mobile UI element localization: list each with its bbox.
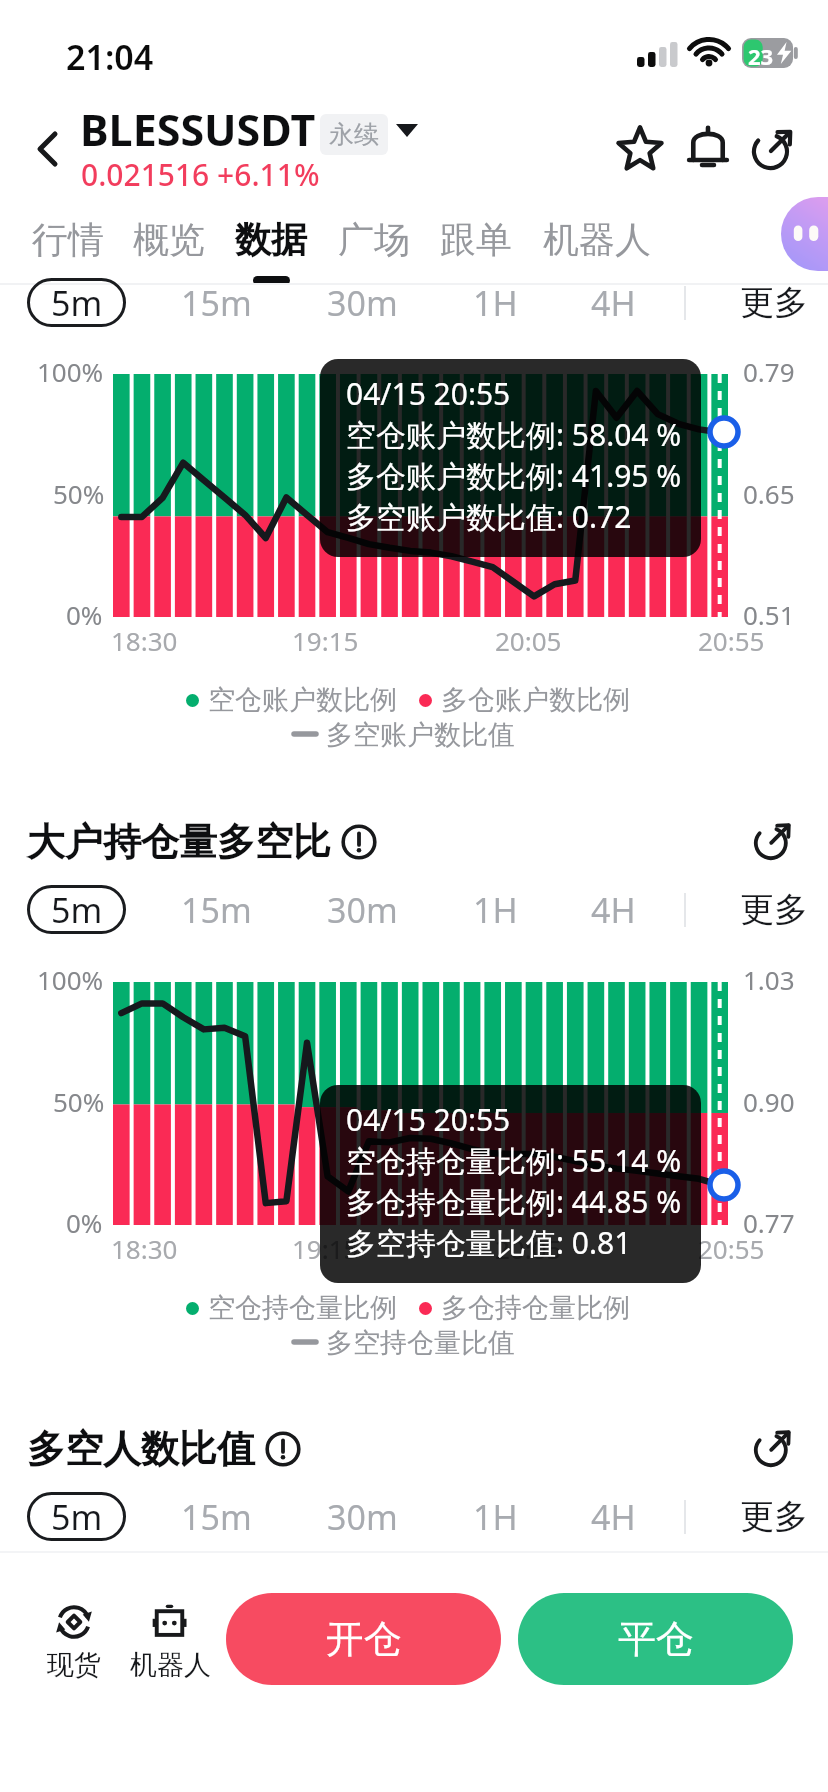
staticText: 15m <box>181 1494 252 1539</box>
button[interactable]: 15m <box>165 280 268 325</box>
staticText: 多空持仓量比值: 0.81 <box>346 1222 632 1263</box>
button[interactable]: Price alert <box>676 116 740 180</box>
staticText: 多仓持仓量比例 <box>441 1291 630 1325</box>
button[interactable]: Favorite <box>608 116 672 180</box>
staticText: 30m <box>327 280 398 325</box>
button[interactable]: Contract type <box>396 124 418 137</box>
staticText: 跟单 <box>440 217 512 262</box>
staticText: 空仓持仓量比例 <box>208 1291 397 1325</box>
staticText: 4H <box>591 887 636 932</box>
button[interactable]: 1H <box>457 280 534 325</box>
staticText: 4H <box>591 280 636 325</box>
button[interactable]: 30m <box>311 887 414 932</box>
button[interactable]: 更多 <box>726 280 822 325</box>
staticText: 多空人数比值 <box>27 1425 255 1473</box>
button[interactable]: 1H <box>457 1494 534 1539</box>
staticText: 04/15 20:55 <box>346 1099 511 1140</box>
staticText: BLESSUSDT <box>80 100 316 159</box>
button[interactable]: Back <box>12 114 82 184</box>
button[interactable]: 机器人 <box>529 205 665 283</box>
staticText: 多仓账户数比例: 41.95 % <box>346 455 682 496</box>
button[interactable]: Share <box>742 116 806 180</box>
button[interactable]: 开仓 <box>226 1593 501 1685</box>
staticText: 19:15 <box>292 1231 359 1266</box>
staticText: 空仓持仓量比例: 55.14 % <box>346 1140 682 1181</box>
staticText: 18:30 <box>111 1231 178 1266</box>
staticText: 5m <box>51 280 103 326</box>
button[interactable]: AI assistant <box>781 197 828 271</box>
button[interactable]: 30m <box>311 280 414 325</box>
staticText: 50% <box>53 1084 105 1119</box>
button[interactable]: Info <box>265 1431 301 1467</box>
staticText: 多空账户数比值: 0.72 <box>346 496 632 537</box>
staticText: 空仓账户数比例 <box>208 683 397 717</box>
button[interactable]: Open full chart <box>745 811 803 869</box>
staticText: 21:04 <box>66 34 154 80</box>
staticText: 多仓持仓量比例: 44.85 % <box>346 1181 682 1222</box>
button[interactable]: 5m <box>27 885 126 934</box>
button[interactable]: Open full chart <box>745 1418 803 1476</box>
button[interactable]: 1H <box>457 887 534 932</box>
button[interactable]: 行情 <box>18 205 118 283</box>
staticText: 0.65 <box>743 476 795 511</box>
staticText: 行情 <box>32 217 104 262</box>
staticText: 15m <box>181 280 252 325</box>
button[interactable]: 现货 <box>34 1594 114 1686</box>
button[interactable]: Info <box>341 824 377 860</box>
staticText: 100% <box>37 962 104 997</box>
button[interactable]: 数据 <box>221 205 321 283</box>
staticText: 概览 <box>133 217 205 262</box>
button[interactable]: 4H <box>575 280 652 325</box>
button[interactable]: 机器人 <box>126 1594 216 1686</box>
staticText: 0.51 <box>743 597 795 632</box>
staticText: 100% <box>37 354 104 389</box>
staticText: 30m <box>327 1494 398 1539</box>
button[interactable]: 跟单 <box>426 205 526 283</box>
staticText: 多空账户数比值 <box>326 718 515 752</box>
staticText: 15m <box>181 887 252 932</box>
button[interactable]: 4H <box>575 887 652 932</box>
staticText: 0.021516 +6.11% <box>81 154 320 195</box>
staticText: 多仓账户数比例 <box>441 683 630 717</box>
button[interactable]: 广场 <box>324 205 424 283</box>
staticText: 04/15 20:55 <box>346 373 511 414</box>
staticText: 4H <box>591 1494 636 1539</box>
staticText: 机器人 <box>543 217 651 262</box>
staticText: 1H <box>473 280 518 325</box>
staticText: 开仓 <box>326 1615 402 1663</box>
button[interactable]: 15m <box>165 887 268 932</box>
staticText: 20:05 <box>495 623 562 658</box>
staticText: 5m <box>51 1494 103 1540</box>
staticText: 平仓 <box>618 1615 694 1663</box>
staticText: 多空持仓量比值 <box>326 1326 515 1360</box>
staticText: 18:30 <box>111 623 178 658</box>
staticText: 1H <box>473 1494 518 1539</box>
staticText: 机器人 <box>130 1648 211 1682</box>
button[interactable]: 4H <box>575 1494 652 1539</box>
staticText: 数据 <box>235 217 307 262</box>
button[interactable]: 更多 <box>726 1494 822 1539</box>
staticText: 50% <box>53 476 105 511</box>
button[interactable]: 30m <box>311 1494 414 1539</box>
button[interactable]: 平仓 <box>518 1593 793 1685</box>
button[interactable]: 永续 <box>320 114 388 155</box>
staticText: 5m <box>51 887 103 933</box>
staticText: 0% <box>66 1205 103 1240</box>
staticText: 更多 <box>740 1495 808 1538</box>
button[interactable]: 15m <box>165 1494 268 1539</box>
staticText: 0.77 <box>743 1205 795 1240</box>
staticText: 20:55 <box>698 1231 765 1266</box>
staticText: 30m <box>327 887 398 932</box>
button[interactable]: 5m <box>27 1492 126 1541</box>
staticText: 0.79 <box>743 354 795 389</box>
staticText: 现货 <box>47 1648 101 1682</box>
staticText: 1H <box>473 887 518 932</box>
button[interactable]: 5m <box>27 278 126 327</box>
staticText: 永续 <box>329 119 379 150</box>
button[interactable]: 更多 <box>726 887 822 932</box>
staticText: 1.03 <box>743 962 795 997</box>
staticText: 空仓账户数比例: 58.04 % <box>346 414 682 455</box>
button[interactable]: 概览 <box>119 205 219 283</box>
staticText: 更多 <box>740 888 808 931</box>
staticText: 20:05 <box>495 1231 562 1266</box>
